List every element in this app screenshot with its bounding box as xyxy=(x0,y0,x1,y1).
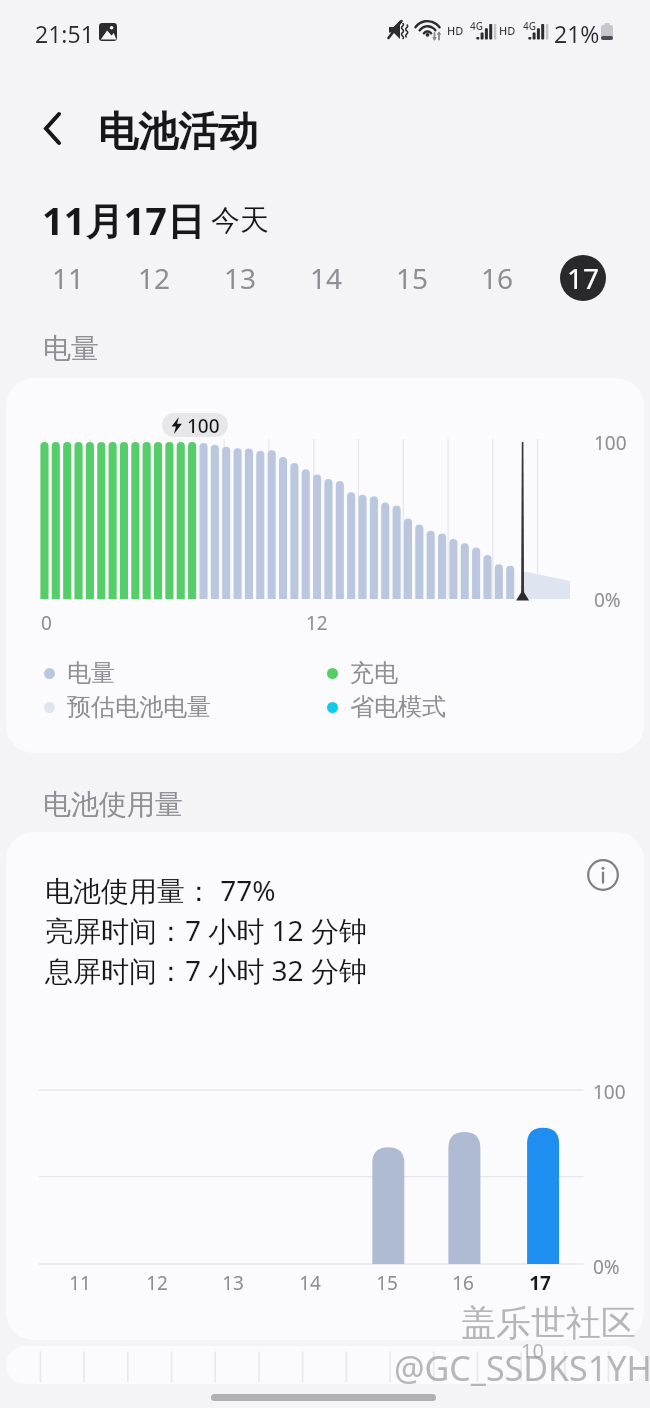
button[interactable]: 13 xyxy=(217,255,263,301)
button[interactable]: 充电 xyxy=(327,658,398,688)
button[interactable]: 11 xyxy=(45,255,91,301)
staticText: 0% xyxy=(593,1254,620,1280)
button[interactable]: 17 xyxy=(560,255,606,301)
staticText: 息屏时间：7 小时 32 分钟 xyxy=(45,951,367,989)
staticText: 12 xyxy=(306,610,328,636)
staticText: 预估电池电量 xyxy=(67,692,211,722)
staticText: 充电 xyxy=(350,658,398,688)
button[interactable]: 15 xyxy=(389,255,435,301)
staticText: 21% xyxy=(554,18,600,49)
button[interactable]: 12 xyxy=(131,255,177,301)
button[interactable]: 电量 xyxy=(44,658,115,688)
staticText: 17 xyxy=(529,1270,551,1296)
staticText: 17 xyxy=(567,259,600,297)
staticText: 盖乐世社区 xyxy=(461,1301,636,1345)
staticText: HD xyxy=(447,23,464,38)
staticText: 10 xyxy=(521,1337,544,1364)
staticText: 16 xyxy=(452,1270,474,1296)
staticText: 省电模式 xyxy=(350,692,446,722)
staticText: @GC_SSDKS1YH xyxy=(394,1345,650,1391)
staticText: 21:51 xyxy=(35,18,94,49)
staticText: 11月17日 xyxy=(42,194,205,246)
staticText: 电池使用量 xyxy=(43,787,183,822)
button[interactable]: 14 xyxy=(303,255,349,301)
button[interactable]: Battery level chart xyxy=(6,378,644,753)
button[interactable]: Battery usage xyxy=(6,832,644,1340)
staticText: 电量 xyxy=(43,331,99,366)
staticText: 12 xyxy=(138,259,171,297)
staticText: 14 xyxy=(310,259,343,297)
staticText: 15 xyxy=(396,259,429,297)
staticText: 14 xyxy=(299,1270,321,1296)
staticText: HD xyxy=(499,23,516,38)
staticText: 4G xyxy=(470,19,483,33)
staticText: 12 xyxy=(146,1270,168,1296)
staticText: 16 xyxy=(481,259,514,297)
staticText: 今天 xyxy=(211,202,269,239)
staticText: 11 xyxy=(52,259,85,297)
staticText: 亮屏时间：7 小时 12 分钟 xyxy=(45,911,367,949)
staticText: 电池使用量： 77% xyxy=(45,871,276,909)
staticText: 0% xyxy=(594,587,621,613)
staticText: 100 xyxy=(593,1079,626,1105)
staticText: 电量 xyxy=(67,658,115,688)
staticText: 4G xyxy=(523,19,536,33)
staticText: 15 xyxy=(376,1270,398,1296)
button[interactable]: 预估电池电量 xyxy=(44,692,211,722)
button[interactable]: Back xyxy=(27,103,77,153)
staticText: 100 xyxy=(187,413,220,437)
staticText: 100 xyxy=(594,430,627,456)
staticText: 11 xyxy=(69,1270,91,1296)
button[interactable]: 16 xyxy=(474,255,520,301)
button[interactable]: Info xyxy=(578,850,628,900)
staticText: 电池活动 xyxy=(98,106,258,156)
staticText: 13 xyxy=(222,1270,244,1296)
button[interactable]: 省电模式 xyxy=(327,692,446,722)
staticText: 0 xyxy=(41,610,52,636)
staticText: 13 xyxy=(224,259,257,297)
